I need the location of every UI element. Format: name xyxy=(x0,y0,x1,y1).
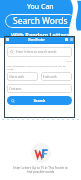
button[interactable]: Word Finder logo xyxy=(31,143,51,163)
staticText: WordFinder xyxy=(28,38,45,42)
staticText: Ends with xyxy=(43,75,57,79)
staticText: Enter letters to search words xyxy=(16,50,57,54)
staticText: You Can xyxy=(27,2,54,12)
staticText: Starts with xyxy=(9,75,25,79)
button[interactable]: Ends with xyxy=(41,72,72,81)
staticText: Search Words xyxy=(13,15,68,27)
staticText: 0/15 xyxy=(7,59,72,62)
button[interactable]: Search xyxy=(7,96,72,105)
staticText: Contains xyxy=(9,87,22,91)
staticText: With Random Letters xyxy=(11,31,70,38)
button[interactable]: Contains xyxy=(7,84,72,93)
staticText: Enter Letters Up to 15 in This Search to… xyxy=(10,166,71,174)
button[interactable]: Starts with xyxy=(7,72,38,81)
staticText: Use these letters and try to find words … xyxy=(7,64,72,70)
staticText: Search xyxy=(15,98,64,103)
button[interactable]: Enter letters to search words xyxy=(7,47,72,57)
